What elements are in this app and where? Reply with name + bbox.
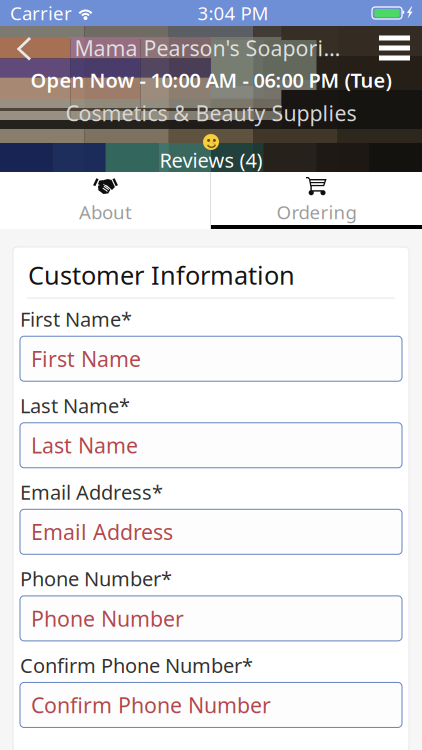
staticText: Email Address*: [20, 479, 163, 505]
staticText: Confirm Phone Number: [31, 691, 271, 719]
staticText: Reviews (4): [159, 147, 262, 173]
staticText: Open Now - 10:00 AM - 06:00 PM (Tue): [30, 67, 391, 93]
button[interactable]: Back: [4, 32, 44, 64]
button[interactable]: About: [0, 172, 211, 229]
staticText: Mama Pearson's Soapori…: [74, 34, 340, 62]
staticText: 3:04 PM: [197, 1, 268, 25]
staticText: Ordering: [276, 200, 356, 224]
staticText: Carrier: [10, 1, 72, 25]
staticText: Cosmetics & Beauty Supplies: [65, 99, 356, 127]
staticText: About: [79, 200, 132, 224]
staticText: Phone Number: [31, 604, 184, 632]
staticText: Last Name*: [20, 392, 130, 419]
staticText: Email Address: [31, 518, 173, 546]
staticText: Customer Information: [28, 258, 295, 292]
staticText: First Name*: [20, 306, 132, 332]
button[interactable]: Ordering: [211, 172, 422, 229]
staticText: First Name: [31, 344, 141, 373]
staticText: Confirm Phone Number*: [20, 652, 253, 678]
staticText: Phone Number*: [20, 565, 172, 592]
button[interactable]: Menu: [371, 32, 418, 64]
staticText: Last Name: [31, 431, 138, 459]
